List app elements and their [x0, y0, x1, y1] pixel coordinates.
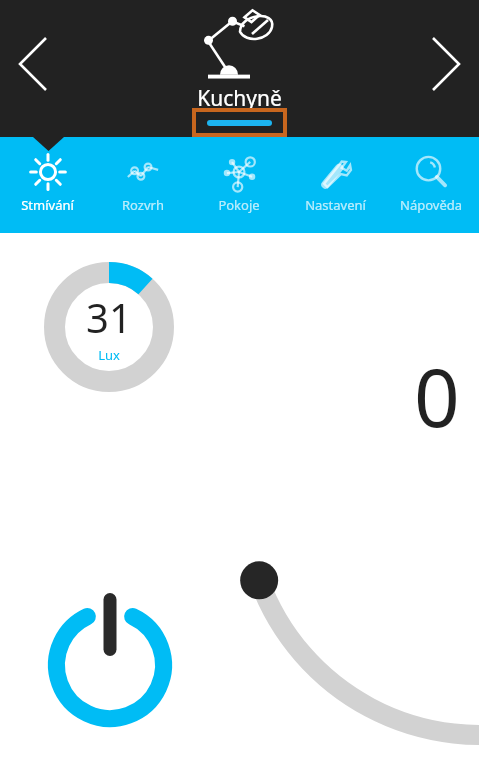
button[interactable]: Stmívání	[0, 137, 95, 233]
button[interactable]: Pokoje	[191, 137, 287, 233]
button[interactable]: Nápověda	[383, 137, 479, 233]
staticText: Rozvrh	[122, 196, 164, 214]
staticText: 31	[86, 290, 132, 344]
staticText: Nastavení	[305, 196, 366, 214]
staticText: Pokoje	[218, 196, 260, 214]
button[interactable]: Dimmer dial	[0, 0, 479, 780]
button[interactable]: Nastavení	[287, 137, 383, 233]
staticText: Kuchyně	[197, 84, 282, 113]
staticText: Nápověda	[400, 196, 462, 214]
button[interactable]: Power toggle	[45, 592, 175, 722]
button[interactable]: Next	[417, 33, 479, 95]
staticText: 0	[414, 341, 460, 450]
button[interactable]: Rozvrh	[95, 137, 191, 233]
button[interactable]: Lux level 31	[44, 262, 174, 392]
button[interactable]: Previous	[0, 33, 62, 95]
staticText: Stmívání	[21, 196, 74, 214]
staticText: Lux	[98, 346, 120, 364]
button[interactable]: Room indicator	[196, 112, 283, 133]
